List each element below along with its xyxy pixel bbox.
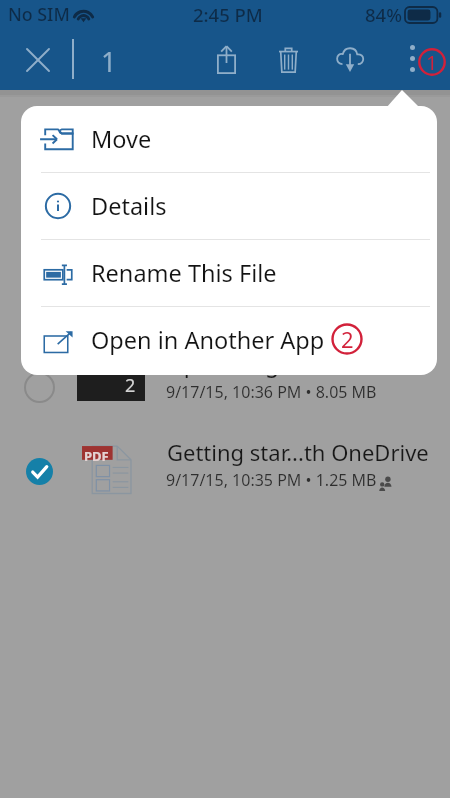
staticText: Open in Another App xyxy=(91,324,325,356)
button[interactable]: Details xyxy=(21,173,437,239)
staticText: PDF xyxy=(84,447,109,465)
button[interactable]: Open in Another App xyxy=(21,307,437,373)
button[interactable]: Close xyxy=(15,37,61,83)
staticText: 9/17/15, 10:35 PM • 1.25 MB xyxy=(166,469,377,491)
staticText: No SIM xyxy=(8,2,70,26)
button[interactable]: 2 xyxy=(0,355,450,430)
button[interactable]: Share xyxy=(204,34,250,80)
staticText: Getting star...th OneDrive xyxy=(167,437,429,467)
button[interactable]: Move xyxy=(21,106,437,172)
button[interactable]: Rename This File xyxy=(21,240,437,306)
button[interactable]: More options xyxy=(392,34,432,74)
staticText: 2 xyxy=(341,324,354,354)
staticText: Details xyxy=(91,190,167,222)
staticText: Move xyxy=(91,123,152,155)
staticText: 2:45 PM xyxy=(193,2,263,27)
button[interactable]: Download xyxy=(327,34,373,80)
staticText: Rename This File xyxy=(91,257,277,289)
button[interactable]: Delete xyxy=(265,34,311,80)
staticText: 2 xyxy=(125,373,136,398)
staticText: 9/17/15, 10:36 PM • 8.05 MB xyxy=(166,381,377,403)
button[interactable]: PDF xyxy=(0,430,450,505)
staticText: 1 xyxy=(426,49,438,76)
staticText: Uploading xyxy=(167,347,280,378)
staticText: 1 xyxy=(101,43,117,80)
staticText: 84% xyxy=(365,2,402,27)
